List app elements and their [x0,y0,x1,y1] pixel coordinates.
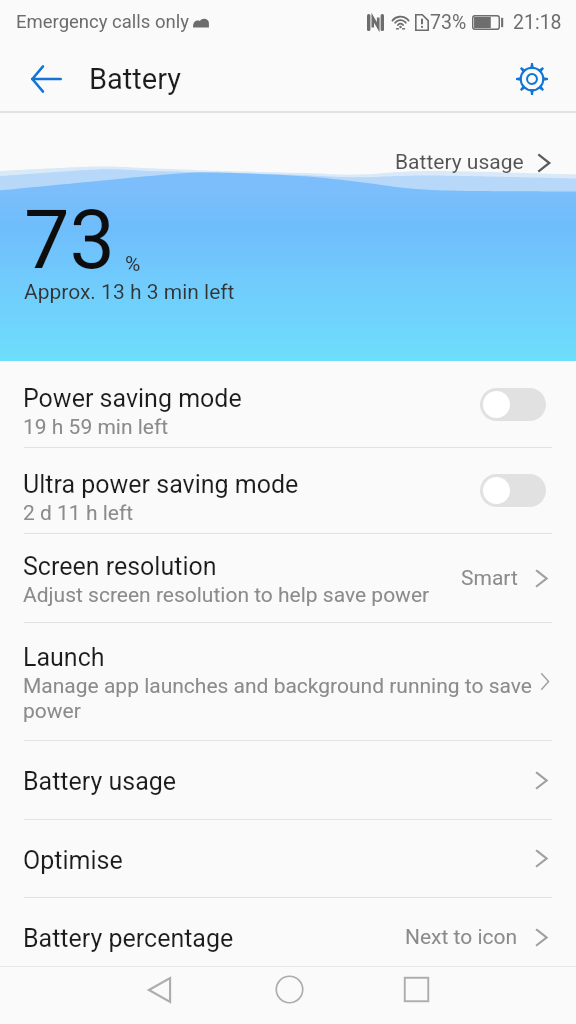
button[interactable]: Back [128,961,190,1018]
button[interactable]: Optimise [0,820,576,897]
staticText: Next to icon [405,925,518,950]
staticText: Optimise [23,846,530,875]
staticText: Emergency calls only [16,11,189,33]
staticText: 73 [24,193,116,288]
button[interactable]: Screen resolution [0,534,576,622]
staticText: 73% [430,11,467,34]
button[interactable]: Settings [509,56,555,102]
staticText: 2 d 11 h left [23,501,134,526]
staticText: Adjust screen resolution to help save po… [23,583,430,608]
staticText: Screen resolution [23,552,217,581]
staticText: Battery percentage [23,924,405,953]
button[interactable]: Back [23,56,69,102]
staticText: Power saving mode [23,384,242,413]
staticText: 19 h 59 min left [23,415,169,440]
staticText: 21:18 [513,11,562,34]
staticText: Launch [23,643,105,672]
button[interactable]: Ultra power saving mode [0,448,576,533]
staticText: Battery [89,62,181,96]
button[interactable]: Battery usage [383,144,576,181]
button[interactable]: Toggle [480,474,546,507]
button[interactable]: Power saving mode [0,361,576,447]
button[interactable]: Battery percentage [0,898,576,976]
staticText: Ultra power saving mode [23,470,299,499]
staticText: % [125,252,141,277]
staticText: Approx. 13 h 3 min left [24,280,235,305]
button[interactable]: Toggle [480,388,546,421]
button[interactable]: Launch [0,623,576,740]
button[interactable]: Home [258,961,320,1018]
staticText: Battery usage [395,150,524,175]
button[interactable]: Recents [385,961,447,1018]
staticText: Smart [461,566,518,591]
staticText: Battery usage [23,767,530,796]
staticText: Manage app launches and background runni… [23,674,537,724]
button[interactable]: Battery usage [0,741,576,819]
